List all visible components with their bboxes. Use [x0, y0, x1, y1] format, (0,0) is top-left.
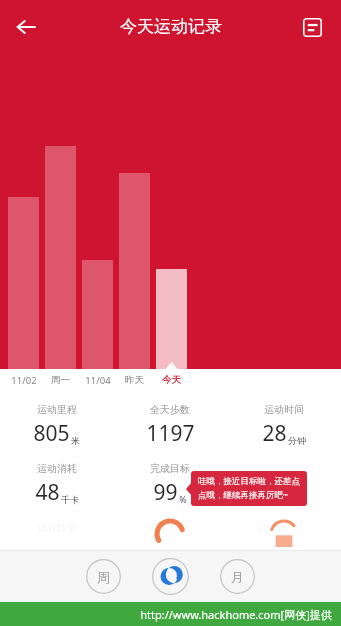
- staticText: 分钟: [288, 435, 306, 446]
- button[interactable]: 昨天: [119, 369, 150, 391]
- staticText: 周: [97, 569, 110, 585]
- button[interactable]: 运动里程: [0, 403, 113, 448]
- button[interactable]: 完成目标: [113, 462, 227, 507]
- staticText: 11/02: [11, 374, 37, 387]
- staticText: 运动时间: [264, 403, 304, 416]
- button[interactable]: Sleep: [152, 558, 189, 595]
- staticText: 99: [153, 478, 178, 507]
- button[interactable]: 11/02: [8, 369, 39, 391]
- staticText: 运动消耗: [37, 462, 77, 475]
- staticText: 805: [33, 419, 70, 448]
- staticText: 哇哦，接近目标啦，还差点: [198, 476, 300, 487]
- button[interactable]: 运动消耗: [0, 462, 113, 507]
- button[interactable]: 哇哦，接近目标啦，还差点: [191, 471, 307, 506]
- staticText: 月: [231, 569, 244, 585]
- staticText: 今天: [162, 374, 181, 386]
- staticText: 28: [262, 419, 287, 448]
- button[interactable]: 今天: [156, 369, 187, 391]
- staticText: 完成目标: [150, 462, 190, 475]
- button[interactable]: 运动时间: [227, 403, 341, 448]
- staticText: 周一: [51, 374, 70, 386]
- staticText: 千卡: [61, 494, 79, 505]
- button[interactable]: Back: [4, 5, 48, 49]
- staticText: 11/04: [85, 374, 111, 387]
- staticText: 点哦，继续再接再厉吧~: [198, 489, 288, 501]
- button[interactable]: Records: [292, 7, 332, 47]
- staticText: 1197: [146, 419, 195, 448]
- staticText: http://www.hackhome.com[网侠]提供: [140, 607, 332, 622]
- staticText: 今天运动记录: [120, 16, 222, 37]
- button[interactable]: 11/04: [82, 369, 113, 391]
- button[interactable]: 周一: [45, 369, 76, 391]
- staticText: 米: [71, 435, 80, 446]
- staticText: 运动里程: [37, 403, 77, 416]
- button[interactable]: 月: [220, 559, 255, 594]
- staticText: %: [179, 493, 187, 505]
- button[interactable]: 周: [86, 559, 121, 594]
- button[interactable]: 全天步数: [113, 403, 227, 448]
- staticText: 全天步数: [150, 403, 190, 416]
- staticText: 48: [35, 478, 60, 507]
- staticText: 昨天: [125, 374, 144, 386]
